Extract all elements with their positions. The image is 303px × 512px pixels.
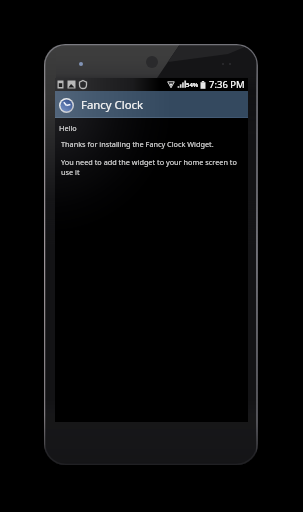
staticText: You need to add the widget to your home … [61,157,245,177]
button[interactable]: Fancy Clock [55,91,248,118]
staticText: Hello [59,123,77,133]
staticText: Thanks for installing the Fancy Clock Wi… [61,139,214,149]
staticText: 7:36 PM [209,78,245,91]
staticText: Fancy Clock [81,97,144,113]
staticText: 54% [186,81,199,89]
